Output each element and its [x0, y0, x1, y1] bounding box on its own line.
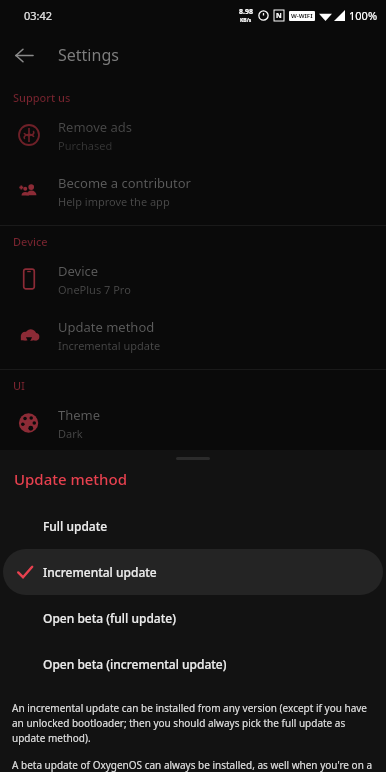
staticText: Settings	[58, 44, 119, 66]
staticText: KB/s	[240, 17, 252, 24]
staticText: Update method	[14, 469, 127, 489]
staticText: Update method	[58, 318, 155, 336]
staticText: Dark	[58, 426, 83, 441]
staticText: Support us	[13, 90, 71, 105]
button[interactable]: Update method	[0, 307, 386, 363]
button[interactable]: Back	[0, 31, 48, 79]
button[interactable]: Open beta (full update)	[3, 595, 383, 641]
staticText: Device	[58, 262, 99, 280]
staticText: 100%	[349, 8, 378, 23]
staticText: Open beta (incremental update)	[43, 656, 227, 672]
staticText: UI	[13, 378, 26, 393]
staticText: A beta update of OxygenOS can always be …	[12, 758, 374, 772]
staticText: An incremental update can be installed f…	[12, 701, 374, 745]
staticText: Incremental update	[43, 564, 157, 580]
staticText: Open beta (full update)	[43, 610, 176, 626]
staticText: Device	[13, 234, 48, 249]
button[interactable]: Full update	[3, 503, 383, 549]
staticText: Full update	[43, 518, 108, 534]
staticText: N	[276, 11, 282, 21]
staticText: Become a contributor	[58, 174, 191, 192]
button[interactable]: Incremental update	[3, 549, 383, 595]
staticText: Purchased	[58, 138, 113, 153]
staticText: OnePlus 7 Pro	[58, 282, 131, 297]
staticText: Remove ads	[58, 118, 133, 136]
button[interactable]: Remove ads	[0, 107, 386, 163]
button[interactable]: Open beta (incremental update)	[3, 641, 383, 687]
button[interactable]: Become a contributor	[0, 163, 386, 219]
button[interactable]: Device	[0, 251, 386, 307]
button[interactable]: Theme	[0, 395, 386, 451]
staticText: 8.98	[239, 7, 253, 17]
staticText: Incremental update	[58, 338, 161, 353]
staticText: W-WIFI	[291, 12, 313, 20]
staticText: Theme	[58, 406, 101, 424]
staticText: Help improve the app	[58, 194, 170, 209]
staticText: 03:42	[24, 8, 53, 23]
